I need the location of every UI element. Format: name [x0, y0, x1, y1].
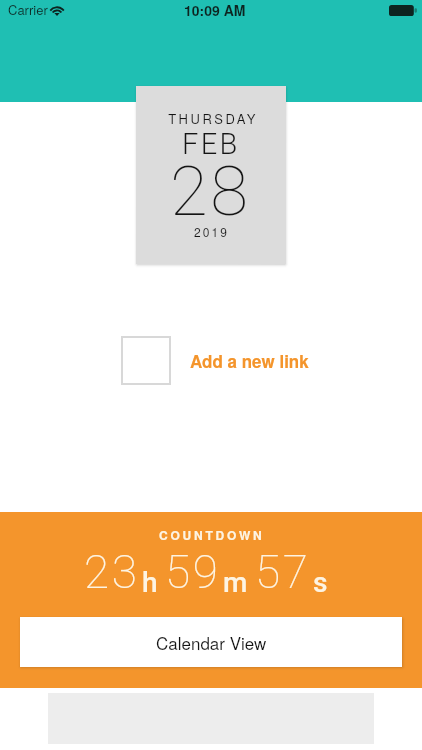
- staticText: 2019: [194, 223, 230, 240]
- staticText: THURSDAY: [168, 109, 258, 128]
- button[interactable]: Calendar View: [20, 617, 402, 667]
- staticText: FEB: [182, 127, 240, 161]
- button[interactable]: Add a new link: [121, 336, 309, 385]
- staticText: 23: [84, 545, 140, 599]
- staticText: m: [223, 566, 248, 599]
- button[interactable]: THURSDAY: [136, 86, 286, 264]
- staticText: s: [313, 566, 328, 599]
- staticText: 57: [255, 545, 311, 599]
- staticText: 59: [165, 545, 221, 599]
- staticText: 10:09 AM: [184, 0, 246, 20]
- staticText: h: [142, 566, 158, 599]
- staticText: Calendar View: [156, 630, 267, 654]
- staticText: 28: [170, 151, 251, 232]
- staticText: COUNTDOWN: [159, 526, 265, 543]
- staticText: Add a new link: [190, 349, 309, 373]
- staticText: Carrier: [8, 0, 48, 19]
